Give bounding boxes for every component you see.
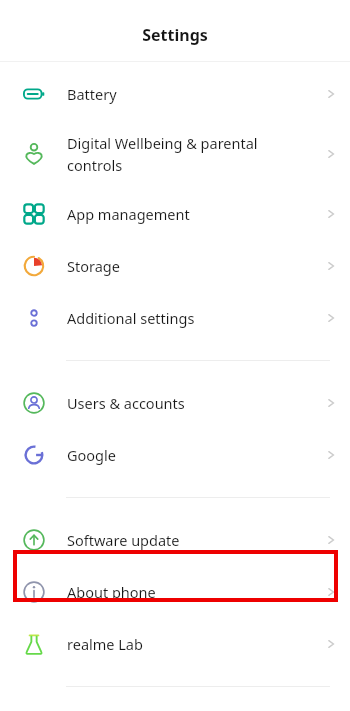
staticText: Storage [67, 256, 120, 276]
staticText: Users & accounts [67, 393, 185, 413]
staticText: Software update [67, 530, 180, 550]
button[interactable]: Users & accounts [0, 377, 350, 429]
staticText: Additional settings [67, 308, 195, 328]
button[interactable]: Software update [0, 514, 350, 566]
staticText: Settings [142, 24, 208, 46]
staticText: Digital Wellbeing & parental [67, 133, 258, 153]
staticText: Google [67, 445, 116, 465]
button[interactable]: realme Lab [0, 618, 350, 670]
staticText: Battery [67, 84, 117, 104]
button[interactable]: Additional settings [0, 292, 350, 344]
staticText: controls [67, 155, 123, 175]
staticText: App management [67, 204, 190, 224]
button[interactable]: Google [0, 429, 350, 481]
button[interactable]: About phone [0, 566, 350, 618]
button[interactable]: Battery [0, 68, 350, 120]
button[interactable]: Digital Wellbeing & parental [0, 120, 350, 188]
staticText: About phone [67, 582, 156, 602]
staticText: realme Lab [67, 634, 143, 654]
button[interactable]: Storage [0, 240, 350, 292]
button[interactable]: App management [0, 188, 350, 240]
